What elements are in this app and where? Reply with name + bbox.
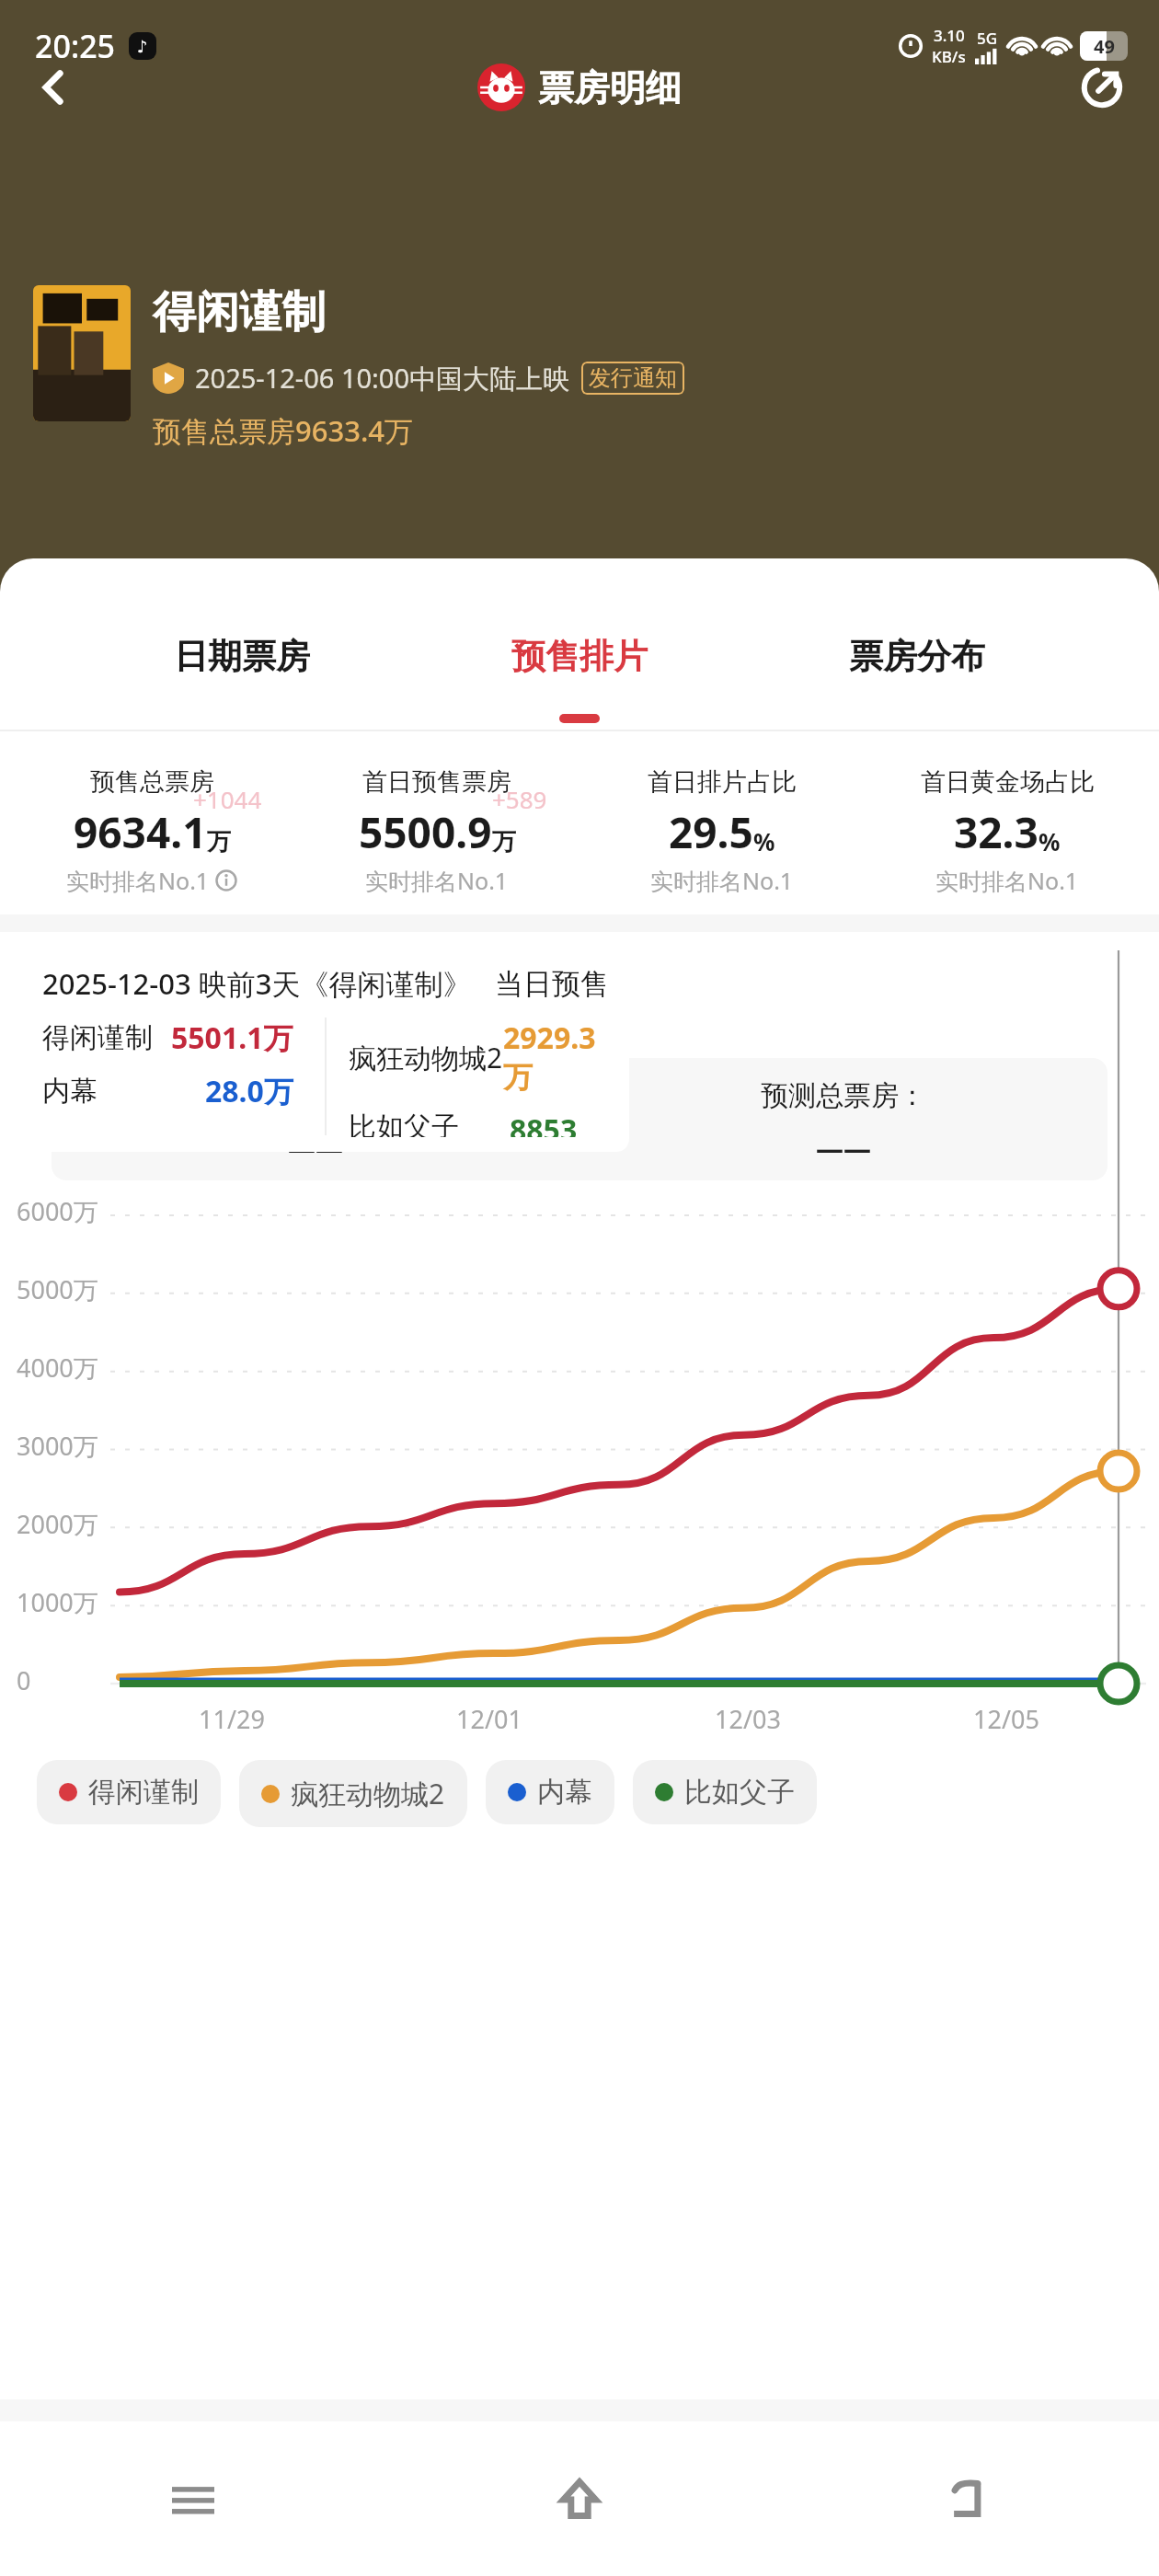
staticText: 得闲谨制 [42, 1020, 153, 1055]
staticText: 5000万 [17, 1272, 98, 1306]
staticText: 5501.1万 [171, 1018, 293, 1058]
button[interactable]: Home [386, 2421, 773, 2576]
staticText: 0 [17, 1663, 31, 1697]
staticText: 实时排名No.1 [66, 865, 210, 896]
staticText: 内幕 [537, 1775, 592, 1810]
button[interactable]: 预测首日票房： [52, 1058, 1107, 1180]
staticText: 万 [207, 827, 231, 857]
staticText: 3000万 [17, 1429, 98, 1463]
staticText: 票房分布 [849, 635, 985, 678]
button[interactable]: Recent apps [0, 2421, 386, 2576]
staticText: 2000万 [17, 1507, 98, 1541]
staticText: % [753, 825, 775, 857]
staticText: 首日排片占比 [648, 766, 797, 798]
staticText: 49 [1094, 34, 1115, 59]
staticText: 5G [977, 28, 998, 49]
staticText: 9634.1 [74, 803, 207, 861]
staticText: 预售总票房 [90, 766, 214, 798]
button[interactable]: 得闲谨制 [37, 1760, 221, 1824]
staticText: 2025-12-06 10:00中国大陆上映 [195, 360, 570, 397]
button[interactable]: 预售总票房 [9, 766, 294, 896]
staticText: 3.10 [934, 25, 965, 46]
staticText: 日期票房 [174, 635, 310, 678]
staticText: ♪ [137, 37, 148, 56]
staticText: 首日票房竞争趋势 [39, 971, 348, 1019]
button[interactable]: 首日排片占比 [579, 766, 865, 896]
staticText: 11/29 [199, 1702, 265, 1736]
staticText: 5500.9 [359, 803, 492, 861]
staticText: 比如父子 [684, 1775, 795, 1810]
staticText: 12/03 [715, 1702, 781, 1736]
staticText: 当日预售 [495, 966, 609, 1002]
staticText: KB/s [932, 46, 966, 67]
staticText: 预测总票房： [761, 1078, 926, 1113]
button[interactable]: Back [773, 2421, 1159, 2576]
staticText: 预售总票房9633.4万 [153, 411, 414, 450]
staticText: 得闲谨制 [88, 1775, 199, 1810]
staticText: 实时排名No.1 [365, 865, 509, 896]
staticText: 疯狂动物城2 [291, 1775, 445, 1812]
staticText: 实时排名No.1 [935, 865, 1079, 896]
staticText: 20:25 [35, 25, 116, 67]
staticText: 得闲谨制 [153, 285, 326, 339]
staticText: 28.0万 [205, 1071, 293, 1111]
staticText: 29.5 [669, 803, 753, 861]
staticText: 发行通知 [589, 364, 677, 392]
button[interactable]: Share [1063, 49, 1141, 126]
button[interactable]: 首日预售票房 [294, 766, 579, 896]
staticText: 4000万 [17, 1351, 98, 1385]
button[interactable]: 比如父子 [633, 1760, 817, 1824]
button[interactable]: 预售排片 [484, 627, 675, 685]
staticText: 预售排片 [511, 635, 648, 678]
staticText: % [1039, 825, 1061, 857]
button[interactable]: 票房分布 [821, 627, 1013, 685]
staticText: 比如父子 [349, 1110, 459, 1137]
button[interactable]: 日期票房 [146, 627, 338, 685]
staticText: 2929.3万 [503, 1018, 609, 1097]
staticText: 内幕 [42, 1074, 98, 1109]
button[interactable]: 发行通知 [589, 364, 677, 392]
button[interactable]: 内幕 [486, 1760, 614, 1824]
staticText: 12/05 [973, 1702, 1039, 1736]
staticText: 首日预售票房 [362, 766, 511, 798]
staticText: 6000万 [17, 1194, 98, 1228]
staticText: 预测首日票房： [219, 1078, 412, 1113]
staticText: —— [288, 1130, 343, 1167]
staticText: 票房明细 [538, 65, 682, 110]
button[interactable]: 首日票房竞争趋势 [39, 971, 1159, 1019]
button[interactable]: 票房明细 [477, 63, 682, 111]
staticText: 8853 [510, 1110, 578, 1137]
button[interactable]: 疯狂动物城2 [239, 1760, 467, 1827]
staticText: 万 [492, 827, 516, 857]
staticText: +1044 [193, 783, 262, 815]
staticText: 首日黄金场占比 [921, 766, 1095, 798]
button[interactable]: 首日黄金场占比 [865, 766, 1150, 896]
staticText: 实时排名No.1 [650, 865, 794, 896]
staticText: 2025-12-03 映前3天《得闲谨制》 [42, 964, 472, 1003]
staticText: 1000万 [17, 1585, 98, 1619]
staticText: +589 [492, 783, 547, 815]
button[interactable]: 2025-12-03 映前3天《得闲谨制》 [22, 949, 629, 1152]
staticText: —— [816, 1130, 871, 1167]
staticText: 疯狂动物城2 [349, 1039, 503, 1076]
staticText: 32.3 [954, 803, 1039, 861]
button[interactable]: Back [15, 49, 92, 126]
staticText: 12/01 [456, 1702, 522, 1736]
